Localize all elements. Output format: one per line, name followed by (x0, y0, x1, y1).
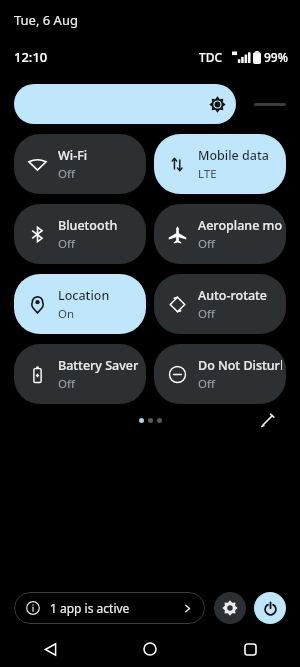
staticText: Off (58, 236, 75, 252)
button[interactable]: 1 app is active (14, 592, 205, 624)
staticText: Wi-Fi (58, 147, 88, 164)
button[interactable]: Battery Saver (14, 344, 146, 404)
staticText: Aeroplane mode (198, 217, 282, 234)
button[interactable]: Brightness (14, 82, 286, 126)
button[interactable]: Power (254, 592, 286, 624)
button[interactable]: Edit tiles (254, 407, 280, 433)
staticText: Bluetooth (58, 217, 118, 234)
button[interactable]: Mobile data (154, 134, 286, 194)
button[interactable]: Location (14, 274, 146, 334)
button[interactable]: Bluetooth (14, 204, 146, 264)
button[interactable]: Recents (200, 631, 300, 667)
staticText: On (58, 306, 75, 322)
button[interactable]: Settings (214, 592, 246, 624)
staticText: Mobile data (198, 147, 269, 164)
staticText: Auto-rotate (198, 287, 268, 304)
button[interactable]: Wi-Fi (14, 134, 146, 194)
staticText: Do Not Disturb (198, 357, 282, 374)
staticText: Off (198, 306, 215, 322)
button[interactable]: Home (100, 631, 200, 667)
staticText: Battery Saver (58, 357, 139, 374)
staticText: 1 app is active (50, 600, 130, 616)
staticText: Off (198, 236, 215, 252)
staticText: Off (58, 376, 75, 392)
button[interactable]: Do Not Disturb (154, 344, 286, 404)
staticText: 12:10 (14, 48, 48, 66)
staticText: 99% (264, 49, 288, 65)
staticText: Off (58, 166, 75, 182)
staticText: Location (58, 287, 110, 304)
button[interactable]: Back (0, 631, 100, 667)
staticText: LTE (198, 166, 217, 182)
staticText: Tue, 6 Aug (14, 11, 78, 29)
staticText: TDC (199, 49, 223, 65)
button[interactable]: Auto-rotate (154, 274, 286, 334)
staticText: Off (198, 376, 215, 392)
button[interactable]: Aeroplane mode (154, 204, 286, 264)
